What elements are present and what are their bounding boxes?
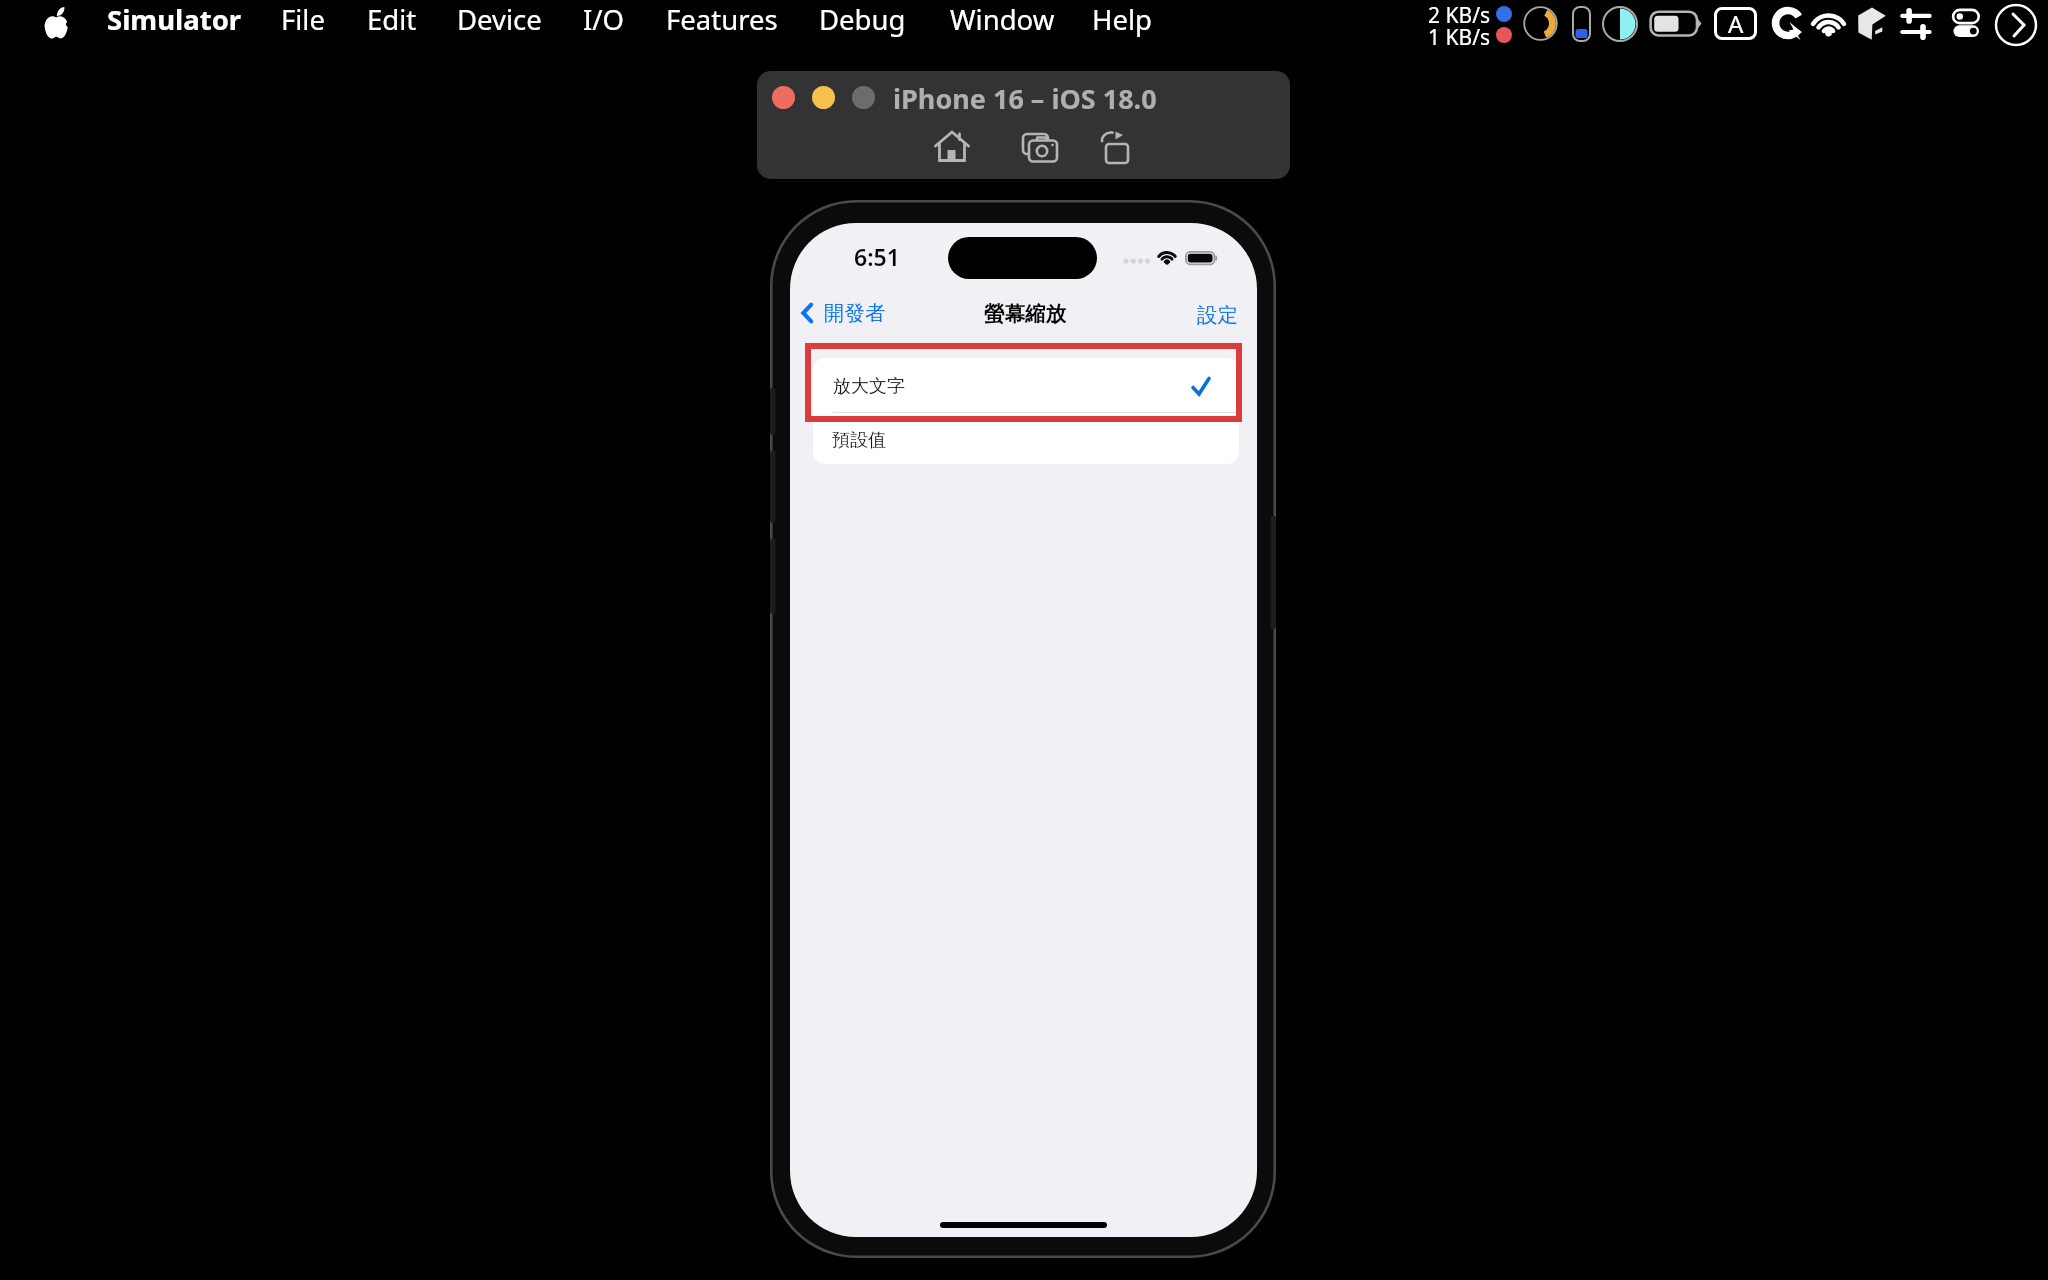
staticText: 設定 <box>1197 302 1238 328</box>
button[interactable]: Minimize window <box>812 86 835 109</box>
staticText: iPhone 16 – iOS 18.0 <box>893 80 1157 117</box>
button[interactable]: Power <box>1771 5 1809 43</box>
button[interactable]: Disk usage <box>1522 5 1560 43</box>
button[interactable]: Close window <box>772 86 795 109</box>
button[interactable]: Screenshot <box>1021 131 1059 165</box>
button[interactable]: Zoom window <box>852 86 875 109</box>
staticText: 6:51 <box>854 241 900 272</box>
button[interactable]: 2 KB/s <box>1410 0 1494 46</box>
staticText: I/O <box>583 1 625 38</box>
staticText: Edit <box>367 1 417 38</box>
staticText: A <box>1728 7 1744 40</box>
button[interactable]: 放大文字 <box>813 358 1239 413</box>
button[interactable]: Input source <box>1714 7 1757 40</box>
button[interactable]: Window <box>950 0 1055 46</box>
staticText: Debug <box>819 1 906 38</box>
staticText: 2 KB/s <box>1414 1 1490 30</box>
button[interactable]: Apple menu <box>40 7 72 39</box>
button[interactable]: Toggles <box>1946 6 1990 44</box>
staticText: Features <box>666 1 778 38</box>
button[interactable]: Rotate <box>1099 131 1131 165</box>
button[interactable]: I/O <box>583 0 625 46</box>
button[interactable]: 開發者 <box>797 297 889 329</box>
staticText: 1 KB/s <box>1414 23 1490 52</box>
button[interactable]: Dropbox <box>1852 4 1894 46</box>
staticText: File <box>281 1 325 38</box>
button[interactable]: Device <box>457 0 542 46</box>
staticText: Window <box>950 1 1055 38</box>
button[interactable]: Audio settings <box>1894 4 1940 46</box>
button[interactable]: Help <box>1092 0 1152 46</box>
staticText: 放大文字 <box>833 375 905 398</box>
staticText: Help <box>1092 1 1152 38</box>
button[interactable]: Debug <box>819 0 906 46</box>
staticText: 預設值 <box>832 429 886 452</box>
button[interactable]: Home <box>934 130 970 164</box>
button[interactable]: Wi-Fi <box>1810 8 1847 38</box>
button[interactable]: Control Centre <box>1994 3 2038 47</box>
button[interactable]: File <box>281 0 325 46</box>
button[interactable]: Battery <box>1645 6 1710 44</box>
button[interactable]: 設定 <box>1194 299 1241 331</box>
button[interactable]: 預設值 <box>813 413 1239 464</box>
staticText: Simulator <box>107 1 242 38</box>
staticText: 螢幕縮放 <box>984 301 1066 327</box>
button[interactable]: Simulator <box>107 0 242 46</box>
button[interactable]: Display brightness <box>1601 5 1639 43</box>
staticText: 開發者 <box>824 300 886 326</box>
button[interactable]: Edit <box>367 0 417 46</box>
staticText: Device <box>457 1 542 38</box>
button[interactable]: Device battery <box>1571 5 1593 43</box>
button[interactable]: Features <box>666 0 778 46</box>
